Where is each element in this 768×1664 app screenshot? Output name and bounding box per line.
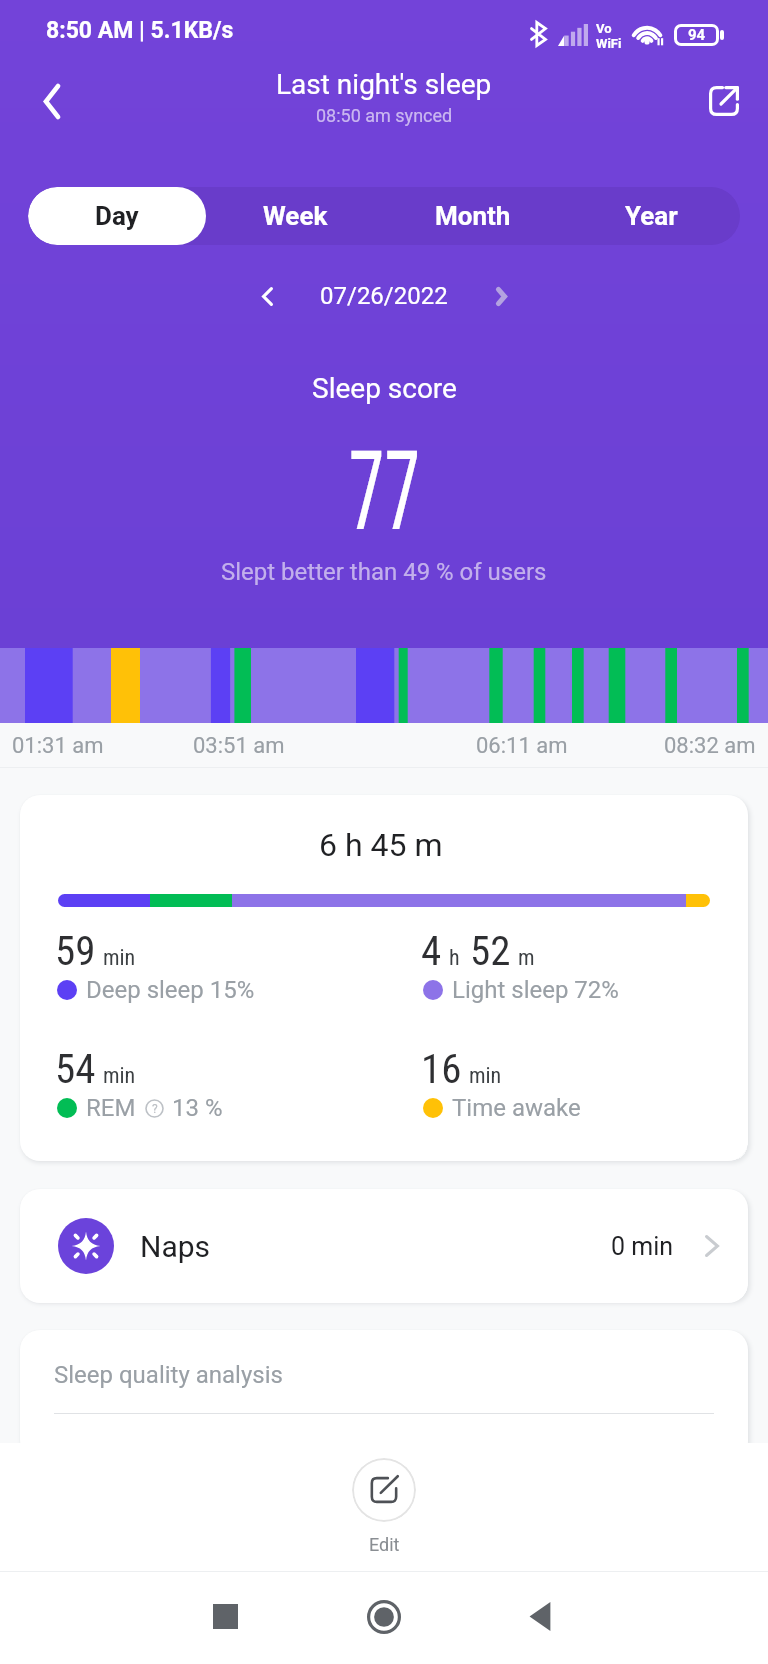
staticText: min	[103, 945, 136, 971]
staticText: 59	[55, 927, 96, 975]
staticText: 03:51 am	[193, 733, 285, 759]
staticText: 16	[421, 1045, 462, 1093]
staticText: Slept better than 49 % of users	[221, 558, 547, 586]
staticText: Sleep score	[312, 372, 457, 405]
staticText: 4	[421, 927, 442, 975]
staticText: 52	[470, 927, 511, 975]
button[interactable]: Next day	[475, 270, 527, 322]
staticText: Time awake	[452, 1094, 581, 1122]
button[interactable]: Year	[562, 187, 740, 245]
button[interactable]: Edit	[352, 1458, 416, 1522]
button[interactable]: Back	[24, 73, 80, 129]
button[interactable]: Week	[206, 187, 384, 245]
button[interactable]: Naps	[20, 1189, 748, 1303]
staticText: 06:11 am	[476, 733, 568, 759]
staticText: Light sleep 72%	[452, 976, 619, 1004]
button[interactable]: Day	[28, 187, 206, 245]
staticText: min	[103, 1063, 136, 1089]
staticText: Naps	[140, 1229, 211, 1264]
staticText: Day	[95, 201, 139, 231]
staticText: 94	[688, 26, 706, 44]
staticText: Last night's sleep	[276, 68, 492, 101]
staticText: Week	[263, 201, 328, 231]
staticText: h	[449, 945, 460, 971]
button[interactable]: Recents	[177, 1571, 273, 1664]
staticText: 6 h 45 m	[319, 826, 443, 864]
staticText: ?	[152, 1102, 158, 1116]
staticText: Month	[435, 201, 511, 231]
staticText: 0 min	[611, 1232, 674, 1261]
button[interactable]: Previous day	[241, 270, 293, 322]
staticText: 54	[55, 1045, 96, 1093]
staticText: Vo	[596, 21, 612, 36]
staticText: 07/26/2022	[320, 282, 448, 310]
staticText: 8:50 AM | 5.1KB/s	[46, 17, 234, 44]
staticText: 77	[348, 427, 420, 556]
button[interactable]: Home	[336, 1571, 432, 1664]
button[interactable]: Month	[384, 187, 562, 245]
staticText: REM	[86, 1094, 136, 1122]
staticText: Year	[625, 201, 678, 231]
button[interactable]: Back	[493, 1571, 589, 1664]
staticText: WiFi	[596, 36, 622, 51]
staticText: 13 %	[172, 1094, 223, 1122]
staticText: 08:32 am	[664, 733, 756, 759]
staticText: 01:31 am	[12, 733, 104, 759]
button[interactable]: Share	[696, 73, 752, 129]
staticText: Sleep quality analysis	[54, 1361, 283, 1389]
staticText: min	[469, 1063, 502, 1089]
staticText: Edit	[369, 1534, 400, 1555]
staticText: Deep sleep 15%	[86, 976, 255, 1004]
staticText: m	[518, 945, 535, 971]
staticText: 08:50 am synced	[316, 105, 453, 126]
